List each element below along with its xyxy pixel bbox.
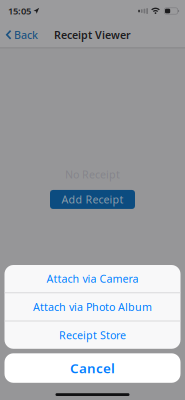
staticText: Attach via Photo Album (33, 300, 152, 314)
staticText: Receipt Store (59, 328, 126, 342)
button[interactable]: Receipt Store (4, 321, 180, 349)
staticText: Back (14, 28, 38, 42)
staticText: Cancel (70, 359, 115, 377)
staticText: 15:05 (8, 5, 31, 17)
staticText: Attach via Camera (46, 272, 138, 286)
staticText: No Receipt (65, 167, 120, 181)
staticText: Receipt Viewer (54, 28, 131, 42)
staticText: Add Receipt (61, 192, 123, 207)
button[interactable]: Attach via Camera (4, 265, 180, 292)
button[interactable]: Back (0, 28, 38, 42)
button[interactable]: Add Receipt (50, 190, 135, 209)
button[interactable]: Cancel (4, 353, 180, 383)
button[interactable]: Attach via Photo Album (4, 293, 180, 321)
